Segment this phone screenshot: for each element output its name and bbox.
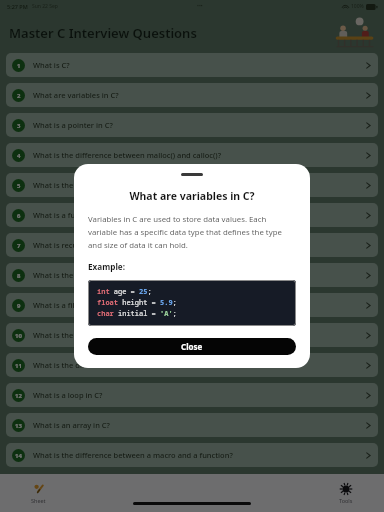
staticText: What is the difference between ++i and i… xyxy=(33,330,189,340)
staticText: Variables in C are used to store data va… xyxy=(88,214,296,250)
staticText: 2 xyxy=(17,92,21,100)
staticText: 6 xyxy=(17,212,21,220)
staticText: int age = 25; xyxy=(97,287,152,297)
staticText: 3 xyxy=(17,122,21,130)
button[interactable]: 9 xyxy=(6,293,378,317)
staticText: What are variables in C? xyxy=(33,90,119,100)
staticText: 8 xyxy=(17,272,21,280)
button[interactable]: Close xyxy=(88,338,296,355)
staticText: 9 xyxy=(17,302,21,310)
staticText: 10 xyxy=(15,332,22,340)
button[interactable]: 5 xyxy=(6,173,378,197)
staticText: What is C? xyxy=(33,60,70,70)
other: Tools xyxy=(340,483,352,495)
staticText: Tools xyxy=(339,497,353,504)
staticText: Sheet xyxy=(31,497,46,504)
staticText: What is a loop in C? xyxy=(33,390,103,400)
staticText: Master C Interview Questions xyxy=(9,24,197,42)
staticText: 7 xyxy=(17,242,21,250)
staticText: 11 xyxy=(15,362,22,370)
staticText: What is recursion in C? xyxy=(33,240,115,250)
button[interactable]: 10 xyxy=(6,323,378,347)
staticText: What is the difference between while and… xyxy=(33,360,218,370)
staticText: ••• xyxy=(197,3,203,10)
button[interactable]: 8 xyxy=(6,263,378,287)
button[interactable]: 13 xyxy=(6,413,378,437)
staticText: What is a file in C? xyxy=(33,300,98,310)
staticText: 14 xyxy=(15,452,22,460)
other: Sheet xyxy=(33,483,45,495)
button[interactable]: 12 xyxy=(6,383,378,407)
staticText: What is the difference between structure… xyxy=(33,270,222,280)
button[interactable]: 14 xyxy=(6,443,378,467)
staticText: Example: xyxy=(88,261,126,272)
button[interactable]: Sheet xyxy=(0,479,77,508)
staticText: 13 xyxy=(15,422,22,430)
staticText: 12 xyxy=(15,392,22,400)
staticText: float height = 5.9; xyxy=(97,298,177,308)
staticText: 5 xyxy=(17,182,21,190)
staticText: What is a pointer in C? xyxy=(33,120,113,130)
staticText: What is the difference between a macro a… xyxy=(33,450,233,460)
staticText: char initial = 'A'; xyxy=(97,309,177,319)
button[interactable]: 7 xyxy=(6,233,378,257)
staticText: Close xyxy=(181,341,203,352)
staticText: What is the use of the sizeof operator i… xyxy=(33,180,186,190)
staticText: 1 xyxy=(17,62,21,70)
button[interactable]: 11 xyxy=(6,353,378,377)
staticText: What is the difference between malloc() … xyxy=(33,150,222,160)
staticText: 100% xyxy=(351,3,364,10)
staticText: 5:27 PM xyxy=(7,3,28,10)
staticText: What are variables in C? xyxy=(88,189,296,203)
button[interactable]: 6 xyxy=(6,203,378,227)
button[interactable]: Tools xyxy=(307,479,384,508)
button[interactable]: 1 xyxy=(6,53,378,77)
staticText: What is an array in C? xyxy=(33,420,110,430)
staticText: Sun 22 Sep xyxy=(32,3,58,10)
staticText: What is a function in C? xyxy=(33,210,117,220)
staticText: 4 xyxy=(17,152,21,160)
button[interactable]: 3 xyxy=(6,113,378,137)
button[interactable]: 4 xyxy=(6,143,378,167)
button[interactable]: 2 xyxy=(6,83,378,107)
